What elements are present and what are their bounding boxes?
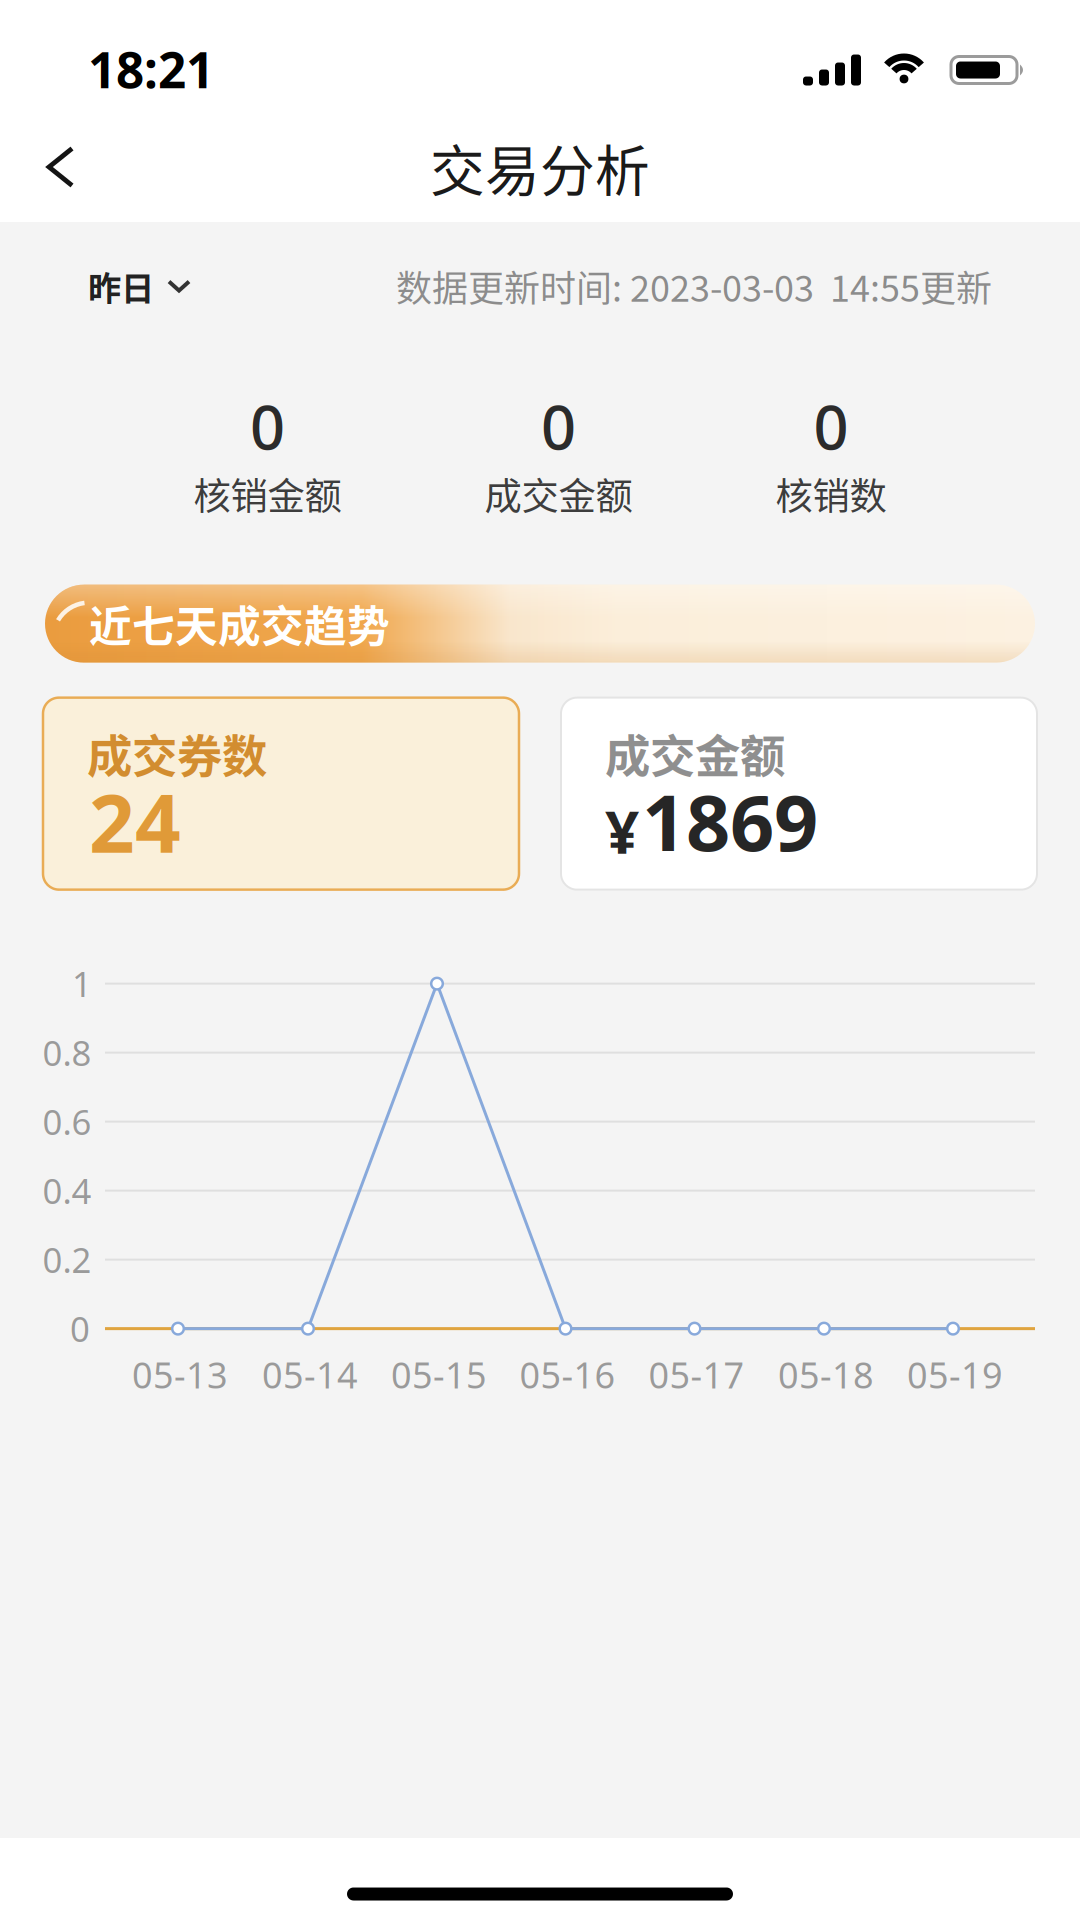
button[interactable]: 成交券数	[43, 698, 519, 890]
button[interactable]: Back	[0, 137, 75, 196]
staticText: 05-19	[907, 1351, 1003, 1398]
staticText: 成交金额	[605, 721, 785, 786]
staticText: 0.8	[42, 1030, 91, 1076]
staticText: 05-14	[262, 1351, 358, 1398]
staticText: 05-17	[648, 1351, 744, 1398]
staticText: 核销数	[775, 467, 886, 521]
staticText: 交易分析	[430, 127, 650, 207]
staticText: 05-16	[519, 1351, 615, 1398]
staticText: 近七天成交趋势	[89, 593, 390, 654]
staticText: 昨日	[88, 262, 154, 310]
staticText: 24	[89, 769, 181, 875]
staticText: 数据更新时间: 2023-03-03 14:55更新	[396, 260, 992, 312]
button[interactable]: 成交金额	[561, 698, 1037, 890]
staticText: 成交金额	[484, 467, 632, 521]
staticText: 05-18	[778, 1351, 874, 1398]
staticText: 1869	[642, 770, 818, 872]
staticText: 0	[813, 385, 848, 466]
staticText: 0	[250, 385, 285, 466]
staticText: 05-15	[391, 1351, 487, 1398]
button[interactable]: 昨日	[88, 262, 191, 310]
staticText: 05-13	[132, 1351, 228, 1398]
staticText: 核销金额	[193, 467, 341, 521]
staticText: 0.4	[42, 1168, 91, 1214]
staticText: 成交券数	[87, 721, 267, 786]
staticText: 18:21	[88, 36, 214, 102]
staticText: 0.6	[42, 1099, 91, 1145]
staticText: 0	[70, 1306, 90, 1352]
staticText: ¥	[605, 791, 639, 870]
staticText: 0	[541, 385, 576, 466]
staticText: 1	[72, 961, 92, 1007]
staticText: 0.2	[42, 1237, 91, 1283]
